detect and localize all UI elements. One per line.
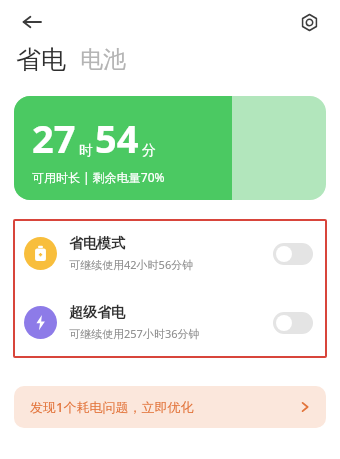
- button[interactable]: Toggle 省电模式: [273, 243, 313, 265]
- button[interactable]: 省电模式: [13, 219, 327, 288]
- staticText: 27: [32, 112, 76, 164]
- staticText: 可继续使用257小时36分钟: [69, 326, 200, 341]
- button[interactable]: 发现1个耗电问题，立即优化: [14, 386, 326, 428]
- staticText: 分: [142, 142, 156, 160]
- staticText: 发现1个耗电问题，立即优化: [30, 398, 194, 416]
- staticText: 省电模式: [69, 235, 125, 253]
- staticText: 54: [95, 112, 139, 164]
- button[interactable]: 27: [14, 96, 326, 200]
- button[interactable]: 超级省电: [13, 288, 327, 357]
- staticText: 可继续使用42小时56分钟: [69, 257, 194, 272]
- staticText: 可用时长 | 剩余电量70%: [32, 169, 165, 185]
- staticText: 超级省电: [69, 304, 125, 322]
- staticText: 时: [79, 142, 93, 160]
- button[interactable]: Toggle 超级省电: [273, 312, 313, 334]
- staticText: 省电: [16, 44, 66, 75]
- button[interactable]: Settings: [292, 5, 326, 39]
- button[interactable]: Back: [14, 4, 50, 40]
- staticText: 电池: [80, 45, 126, 74]
- button[interactable]: 电池: [80, 45, 126, 75]
- button[interactable]: 省电: [16, 44, 70, 75]
